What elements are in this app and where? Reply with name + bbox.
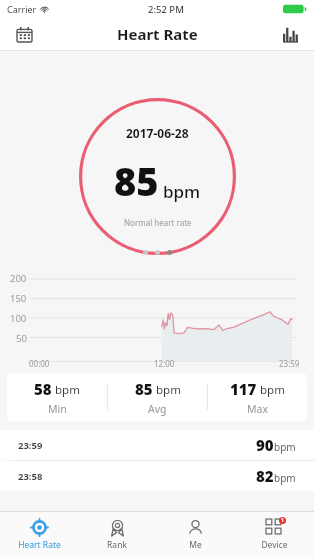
staticText: Device xyxy=(261,539,288,551)
staticText: 23:59 xyxy=(18,439,43,452)
staticText: Carrier xyxy=(7,3,37,15)
staticText: 23:58 xyxy=(18,470,43,483)
button[interactable]: Heart Rate xyxy=(0,512,78,557)
staticText: 100 xyxy=(10,312,27,323)
staticText: 2017-06-28 xyxy=(126,125,189,141)
staticText: 2:52 PM xyxy=(148,3,184,16)
staticText: Me xyxy=(189,539,202,551)
staticText: 82 xyxy=(256,466,274,486)
staticText: Max xyxy=(247,402,268,416)
staticText: Rank xyxy=(107,539,127,551)
staticText: 23:59 xyxy=(279,358,300,369)
staticText: 200 xyxy=(10,272,27,283)
staticText: bpm xyxy=(163,180,201,203)
staticText: 1 xyxy=(281,517,284,524)
staticText: Avg xyxy=(148,402,167,416)
staticText: bpm xyxy=(260,382,285,398)
button[interactable]: 23:58 xyxy=(0,461,314,491)
staticText: Min xyxy=(48,402,67,416)
button[interactable]: 1 xyxy=(235,512,314,557)
staticText: Heart Rate xyxy=(117,24,198,44)
button[interactable]: Me xyxy=(156,512,235,557)
button[interactable]: 23:59 xyxy=(0,430,314,460)
staticText: bpm xyxy=(274,440,296,454)
staticText: 50 xyxy=(16,332,27,343)
staticText: 85 xyxy=(135,379,153,399)
staticText: bpm xyxy=(156,382,181,398)
staticText: 90 xyxy=(256,435,274,455)
staticText: Normal heart rate xyxy=(124,217,192,228)
staticText: Heart Rate xyxy=(18,539,61,551)
staticText: 117 xyxy=(230,379,257,399)
button[interactable]: 58 xyxy=(7,373,307,421)
staticText: 12:00 xyxy=(154,358,175,369)
staticText: 150 xyxy=(10,292,27,303)
staticText: bpm xyxy=(55,382,80,398)
button[interactable]: Statistics xyxy=(274,18,306,50)
staticText: 85 xyxy=(114,155,159,207)
button[interactable]: Calendar xyxy=(8,18,40,50)
button[interactable]: Rank xyxy=(78,512,156,557)
staticText: bpm xyxy=(274,471,296,485)
staticText: 58 xyxy=(34,379,52,399)
staticText: 00:00 xyxy=(29,358,50,369)
